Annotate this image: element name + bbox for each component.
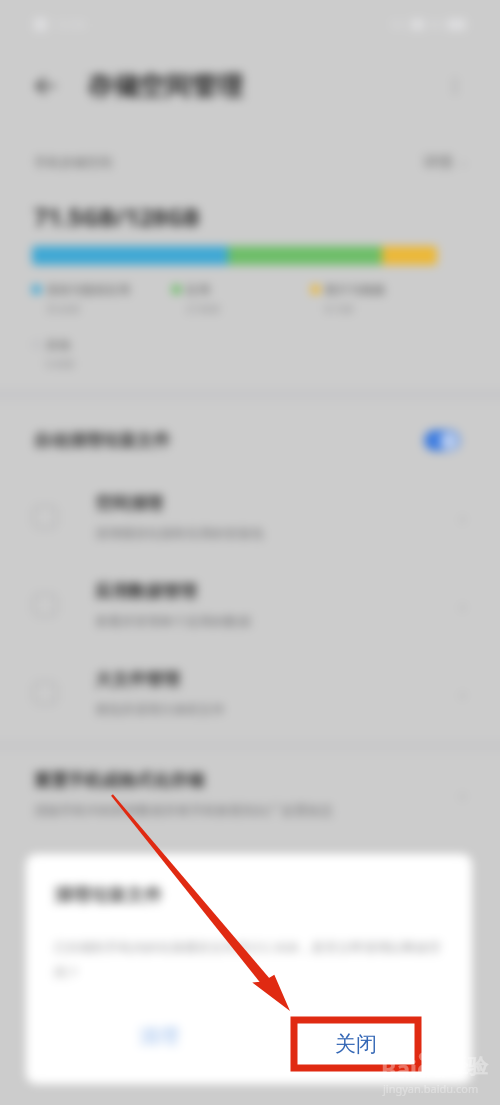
staticText: 详情 <box>423 153 453 172</box>
staticText: 查找并清理大体积文件 <box>95 701 225 717</box>
staticText: 重置手机或格式化存储 <box>34 770 204 791</box>
staticText: 系统与预装应用 <box>46 282 130 297</box>
staticText: 71.5GB/128GB <box>34 200 200 233</box>
staticText: 其他 <box>46 337 70 352</box>
staticText: 经验 <box>448 1054 488 1079</box>
staticText: 关闭 <box>335 1031 377 1057</box>
staticText: 图片与视频 <box>325 282 385 297</box>
button[interactable]: Toggle automatic cleaning <box>424 430 460 451</box>
staticText: jingyan.baidu.com <box>383 1081 479 1096</box>
staticText: Baidu <box>381 1053 447 1084</box>
staticText: 存储空间管理 <box>87 70 243 103</box>
staticText: 关闭 <box>316 1024 356 1049</box>
staticText: 清除手机中的所有数据并将手机恢复到出厂设置状态 <box>34 802 333 818</box>
button[interactable]: 关闭 <box>294 1020 418 1068</box>
staticText: 手机存储空间 <box>34 154 112 170</box>
staticText: 查看并管理单个应用的数据 <box>95 613 251 629</box>
staticText: 大文件管理 <box>95 669 180 690</box>
button[interactable]: 空间清理 <box>0 473 500 561</box>
button[interactable]: Back <box>34 74 58 98</box>
button[interactable]: 清理 <box>121 1014 197 1058</box>
staticText: 空间清理 <box>95 493 163 514</box>
staticText: 清理缓存垃圾和无用的安装包 <box>95 525 264 541</box>
staticText: 清理 <box>139 1024 179 1049</box>
staticText: 自动清理垃圾文件 <box>34 430 170 451</box>
button[interactable]: 大文件管理 <box>0 649 500 737</box>
button[interactable]: 关闭 <box>298 1014 374 1058</box>
staticText: 已扫描到手机内的垃圾缓存文件共计2.3GB，是否立即清理以释放空间？ <box>54 938 442 981</box>
staticText: 应用 <box>186 282 210 297</box>
button[interactable]: 应用数据管理 <box>0 561 500 649</box>
button[interactable]: 重置手机或格式化存储 <box>0 752 500 836</box>
staticText: 应用数据管理 <box>95 581 197 602</box>
staticText: 清理垃圾文件 <box>54 884 162 907</box>
